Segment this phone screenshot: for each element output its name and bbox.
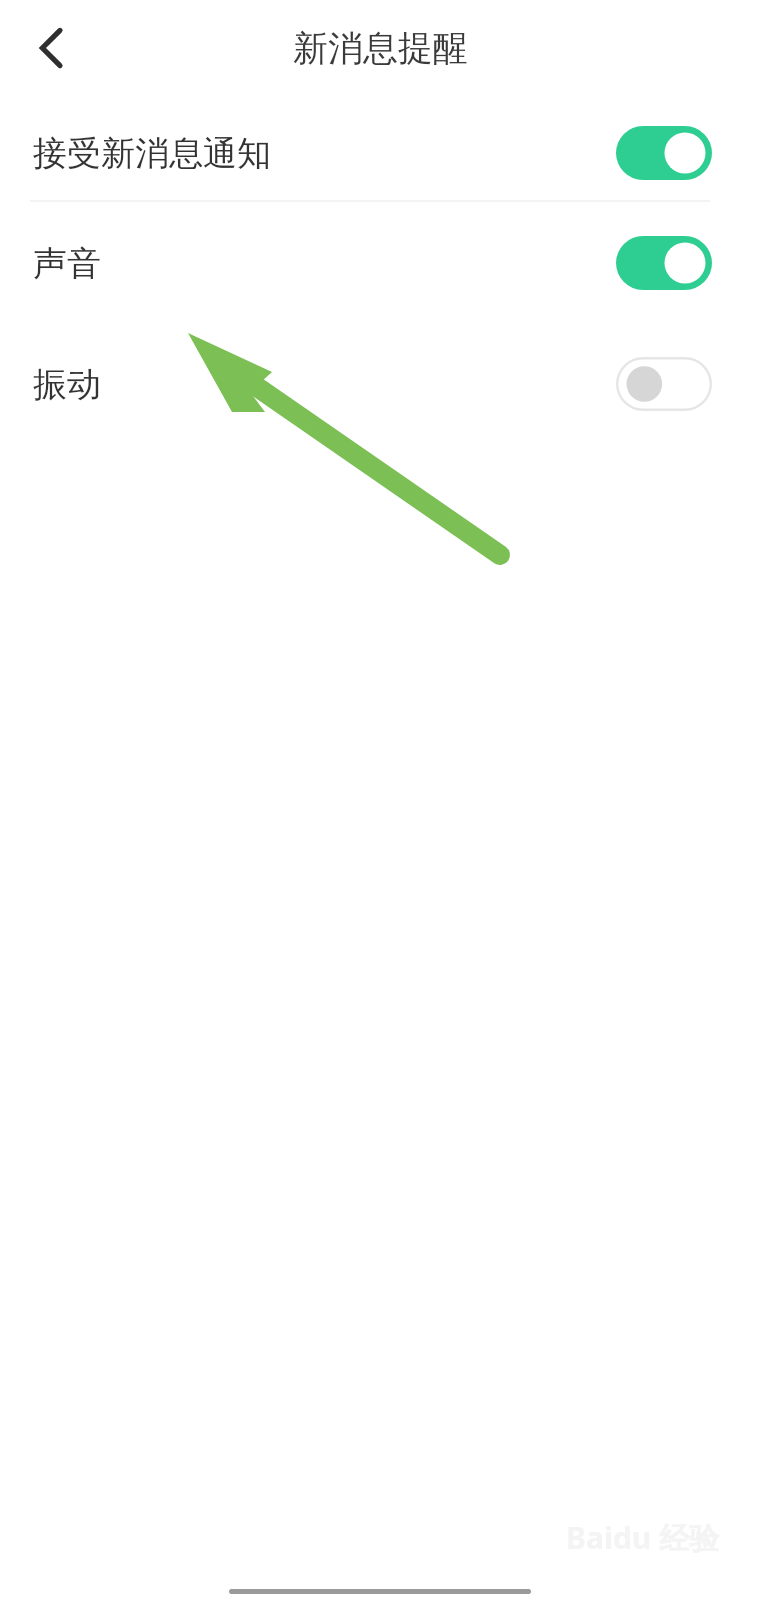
button[interactable]: Off	[616, 357, 712, 411]
button[interactable]: On	[616, 126, 712, 180]
staticText: Baidu 经验	[566, 1517, 720, 1558]
staticText: 振动	[33, 363, 101, 406]
button[interactable]: On	[616, 236, 712, 290]
staticText: 新消息提醒	[293, 26, 468, 70]
button[interactable]: 接受新消息通知	[0, 96, 760, 200]
staticText: 接受新消息通知	[33, 132, 271, 175]
button[interactable]: Back	[14, 10, 90, 86]
staticText: 声音	[33, 242, 101, 285]
button[interactable]: 振动	[0, 324, 760, 444]
button[interactable]: 声音	[0, 202, 760, 324]
